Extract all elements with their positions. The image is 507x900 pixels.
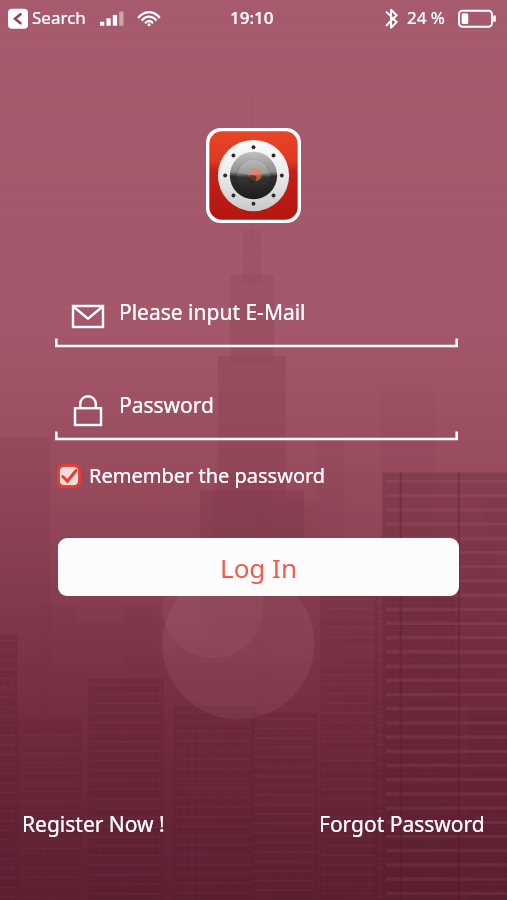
- staticText: Forgot Password: [319, 810, 485, 839]
- button[interactable]: Forgot Password: [319, 810, 485, 839]
- button[interactable]: Password: [55, 389, 458, 443]
- staticText: Search: [32, 6, 86, 29]
- button[interactable]: Please input E-Mail: [55, 296, 458, 350]
- staticText: Register Now !: [22, 810, 165, 839]
- staticText: Please input E-Mail: [119, 298, 306, 327]
- staticText: 24 %: [407, 6, 445, 29]
- button[interactable]: Log In: [58, 538, 459, 596]
- button[interactable]: Register Now !: [22, 810, 165, 839]
- button[interactable]: App logo: [206, 128, 301, 223]
- staticText: 19:10: [230, 6, 274, 29]
- staticText: Log In: [220, 550, 297, 585]
- staticText: Password: [119, 391, 214, 420]
- staticText: Remember the password: [89, 462, 326, 489]
- button[interactable]: Remember the password: [56, 462, 326, 489]
